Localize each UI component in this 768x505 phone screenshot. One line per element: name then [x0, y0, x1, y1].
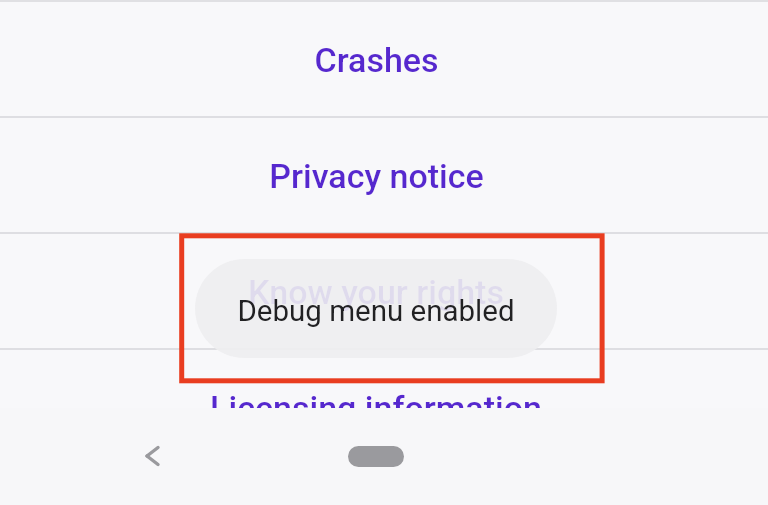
staticText: Debug menu enabled — [237, 294, 515, 329]
button[interactable]: Back — [128, 432, 176, 480]
button[interactable]: Crashes — [0, 2, 768, 116]
staticText: Licensing information — [210, 388, 542, 428]
button[interactable]: Licensing information — [0, 350, 768, 464]
button[interactable]: Home — [336, 432, 416, 480]
staticText: Crashes — [314, 40, 439, 80]
staticText: Know your rights — [248, 272, 504, 312]
button[interactable]: Privacy notice — [0, 118, 768, 232]
button[interactable]: Know your rights — [0, 234, 768, 348]
staticText: Privacy notice — [269, 156, 484, 196]
